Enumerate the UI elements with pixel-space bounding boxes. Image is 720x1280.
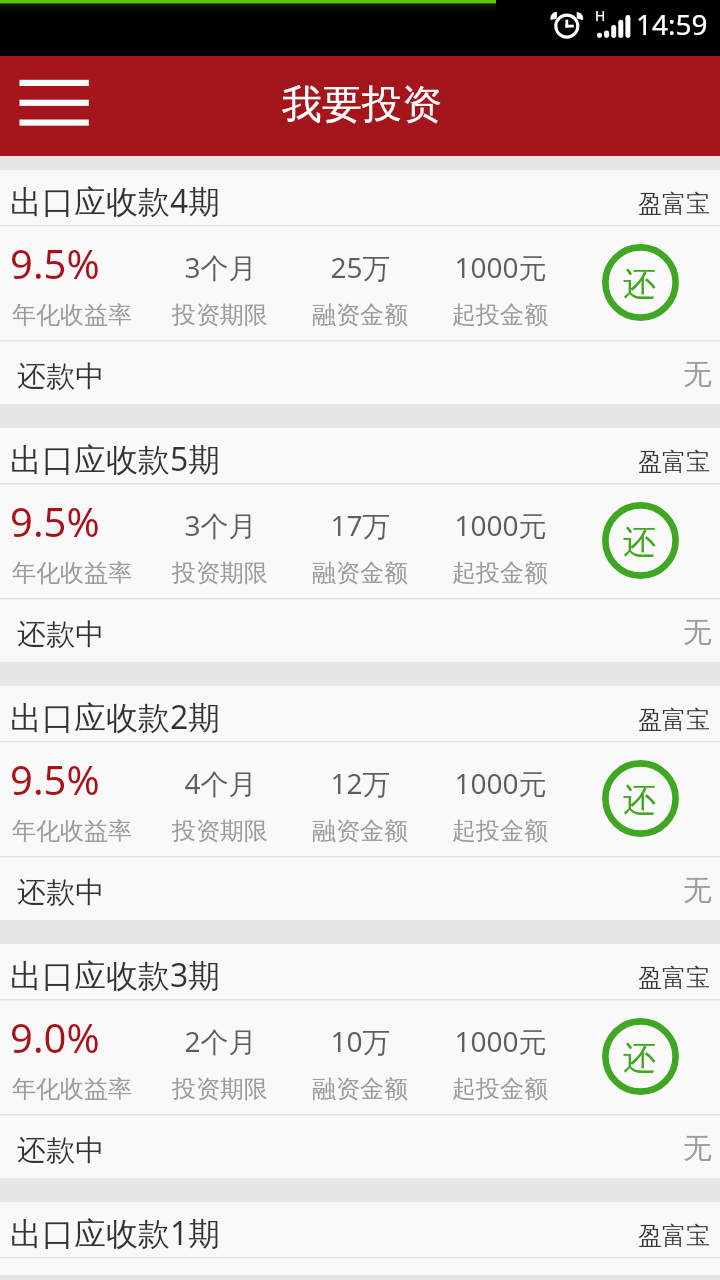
button[interactable]: 还款 Repay	[602, 760, 679, 837]
staticText: 还	[623, 521, 656, 563]
staticText: 我要投资	[282, 79, 442, 129]
staticText: 年化收益率	[12, 1074, 132, 1104]
staticText: 2个月	[184, 1022, 257, 1060]
staticText: 盈富宝	[638, 189, 710, 219]
staticText: 起投金额	[452, 558, 548, 588]
staticText: 起投金额	[452, 300, 548, 330]
staticText: 还	[623, 263, 656, 305]
staticText: 无	[683, 356, 712, 393]
staticText: 年化收益率	[12, 300, 132, 330]
button[interactable]: 出口应收款5期	[0, 428, 720, 483]
staticText: 还款中	[17, 874, 104, 911]
button[interactable]: Open navigation menu	[0, 56, 108, 156]
staticText: 9.5%	[10, 494, 100, 548]
staticText: 9.5%	[10, 236, 100, 290]
staticText: 盈富宝	[638, 705, 710, 735]
staticText: 还款中	[17, 358, 104, 395]
staticText: 10万	[330, 1022, 391, 1060]
staticText: 4个月	[184, 764, 257, 802]
staticText: 1000元	[454, 764, 547, 802]
staticText: 14:59	[636, 5, 708, 43]
staticText: 投资期限	[172, 816, 268, 846]
button[interactable]: 还款 Repay	[602, 1018, 679, 1095]
staticText: 1000元	[454, 248, 547, 286]
staticText: 出口应收款5期	[10, 437, 221, 481]
button[interactable]: 出口应收款1期	[0, 1202, 720, 1257]
staticText: 12万	[330, 764, 391, 802]
staticText: 盈富宝	[638, 963, 710, 993]
staticText: 无	[683, 1130, 712, 1167]
staticText: 融资金额	[312, 1074, 408, 1104]
staticText: 还款中	[17, 1132, 104, 1169]
button[interactable]: 出口应收款4期	[0, 170, 720, 225]
button[interactable]: 还款中	[0, 341, 720, 404]
staticText: 起投金额	[452, 816, 548, 846]
staticText: 25万	[330, 248, 391, 286]
button[interactable]: 还款 Repay	[602, 502, 679, 579]
staticText: 年化收益率	[12, 816, 132, 846]
button[interactable]: 还款中	[0, 599, 720, 662]
staticText: 出口应收款1期	[10, 1211, 221, 1255]
button[interactable]: 9.0%	[0, 1000, 720, 1114]
staticText: 9.0%	[10, 1010, 100, 1064]
staticText: 投资期限	[172, 1074, 268, 1104]
button[interactable]: 9.5%	[0, 742, 720, 856]
staticText: 还款中	[17, 616, 104, 653]
button[interactable]: 还款 Repay	[602, 244, 679, 321]
staticText: 1000元	[454, 506, 547, 544]
button[interactable]: 出口应收款2期	[0, 686, 720, 741]
staticText: 无	[683, 872, 712, 909]
staticText: 起投金额	[452, 1074, 548, 1104]
staticText: 1000元	[454, 1022, 547, 1060]
staticText: 投资期限	[172, 300, 268, 330]
button[interactable]: 还款中	[0, 857, 720, 920]
staticText: 盈富宝	[638, 447, 710, 477]
staticText: 融资金额	[312, 816, 408, 846]
staticText: 出口应收款3期	[10, 953, 221, 997]
staticText: 盈富宝	[638, 1221, 710, 1251]
staticText: 融资金额	[312, 300, 408, 330]
button[interactable]: 还款中	[0, 1115, 720, 1178]
button[interactable]: 9.5%	[0, 226, 720, 340]
staticText: 3个月	[184, 248, 257, 286]
staticText: 出口应收款4期	[10, 179, 221, 223]
button[interactable]: 9.5%	[0, 484, 720, 598]
button[interactable]: 出口应收款3期	[0, 944, 720, 999]
staticText: 出口应收款2期	[10, 695, 221, 739]
staticText: 年化收益率	[12, 558, 132, 588]
staticText: 3个月	[184, 506, 257, 544]
staticText: 无	[683, 614, 712, 651]
staticText: 融资金额	[312, 558, 408, 588]
staticText: 投资期限	[172, 558, 268, 588]
staticText: 9.5%	[10, 752, 100, 806]
staticText: 还	[623, 779, 656, 821]
staticText: 17万	[330, 506, 391, 544]
staticText: 还	[623, 1037, 656, 1079]
staticText: H	[595, 6, 606, 25]
